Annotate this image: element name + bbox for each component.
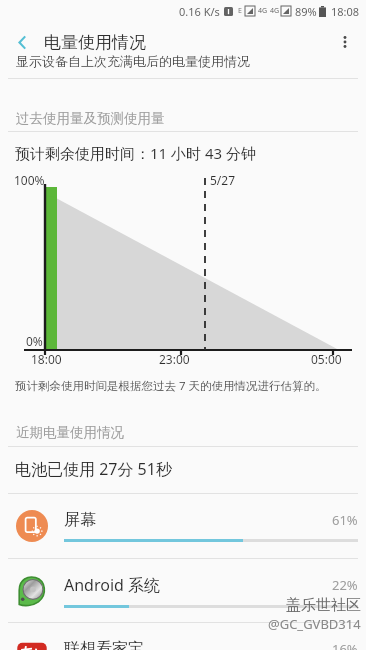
button[interactable]: Android 系统 xyxy=(0,559,366,623)
staticText: 23:00 xyxy=(159,351,190,367)
button[interactable]: 联想看家宝 xyxy=(0,623,366,650)
staticText: 100% xyxy=(14,172,45,188)
button[interactable]: 返回 xyxy=(0,22,44,62)
staticText: 联想看家宝 xyxy=(64,639,144,650)
staticText: 盖乐世社区 xyxy=(286,596,361,615)
staticText: 显示设备自上次充满电后的电量使用情况 xyxy=(16,53,250,69)
staticText: 4G xyxy=(258,6,268,16)
staticText: 近期电量使用情况 xyxy=(16,424,124,441)
staticText: E xyxy=(238,6,242,16)
button[interactable]: 屏幕 xyxy=(0,494,366,558)
staticText: 5/27 xyxy=(210,172,236,188)
staticText: 屏幕 xyxy=(64,510,96,530)
staticText: @GC_GVBD314 xyxy=(268,615,361,633)
staticText: 05:00 xyxy=(311,351,342,367)
staticText: 预计剩余使用时间是根据您过去 7 天的使用情况进行估算的。 xyxy=(15,378,327,394)
staticText: 16% xyxy=(332,640,358,650)
staticText: 电量使用情况 xyxy=(44,32,146,53)
staticText: 18:00 xyxy=(31,351,62,367)
staticText: 61% xyxy=(332,511,358,529)
staticText: 0% xyxy=(26,333,43,349)
staticText: Android 系统 xyxy=(64,574,161,596)
staticText: 18:08 xyxy=(331,4,360,19)
staticText: 4G xyxy=(270,6,280,16)
staticText: 电池已使用 27分 51秒 xyxy=(15,458,172,480)
button[interactable]: 更多选项 xyxy=(324,22,366,62)
staticText: 0.16 K/s xyxy=(179,4,220,19)
staticText: 89% xyxy=(295,4,317,19)
staticText: 预计剩余使用时间：11 小时 43 分钟 xyxy=(15,143,257,163)
staticText: 22% xyxy=(332,576,358,594)
staticText: 过去使用量及预测使用量 xyxy=(16,110,165,127)
